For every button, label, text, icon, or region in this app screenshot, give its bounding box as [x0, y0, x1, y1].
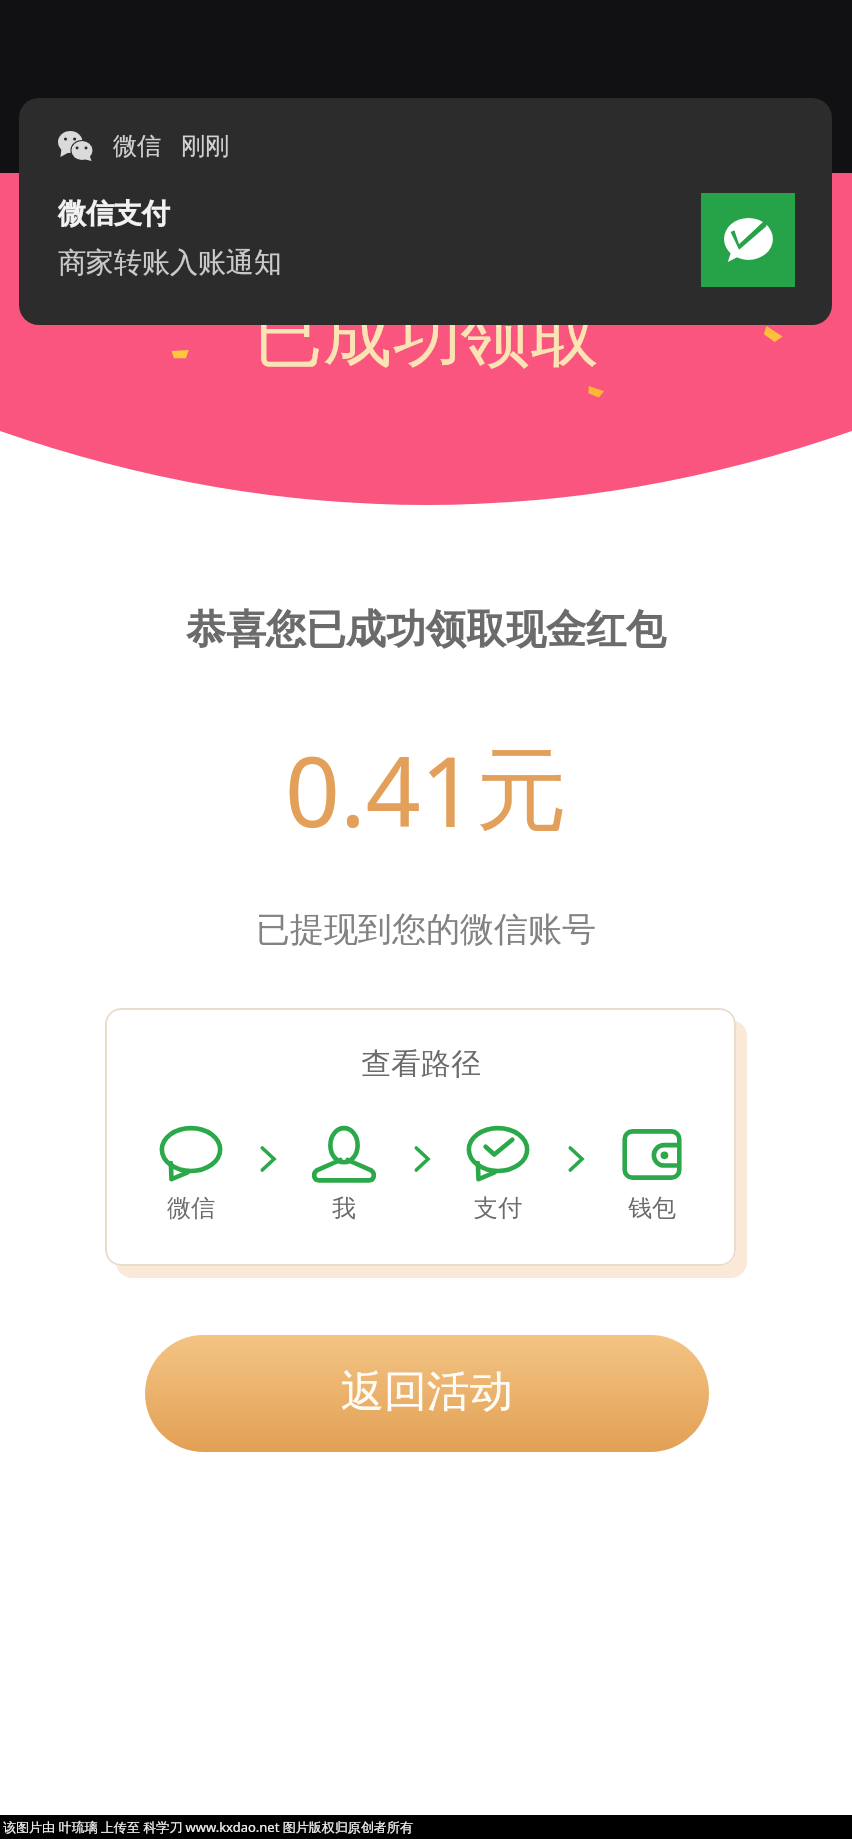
staticText: 微信 — [167, 1193, 215, 1223]
staticText: 恭喜您已成功领取现金红包 — [186, 604, 666, 654]
button[interactable]: 微信 — [19, 98, 832, 325]
staticText: 微信 — [113, 131, 161, 161]
staticText: 该图片由 叶琉璃 上传至 科学刀 www.kxdao.net 图片版权归原创者所… — [3, 1818, 413, 1836]
staticText: 元 — [476, 733, 567, 848]
button[interactable]: 返回活动 — [145, 1335, 709, 1452]
staticText: 支付 — [474, 1193, 522, 1223]
staticText: 已提现到您的微信账号 — [256, 908, 596, 951]
button[interactable]: 微信 — [114, 1127, 268, 1223]
button[interactable]: 我 — [267, 1127, 421, 1223]
staticText: 已成功领取 — [254, 293, 599, 380]
button[interactable]: 支付 — [421, 1127, 575, 1223]
staticText: 返回活动 — [341, 1365, 513, 1419]
staticText: 商家转账入账通知 — [58, 245, 282, 280]
staticText: 查看路径 — [361, 1045, 481, 1083]
staticText: 钱包 — [628, 1193, 676, 1223]
staticText: 刚刚 — [181, 131, 229, 161]
button[interactable]: 钱包 — [575, 1127, 729, 1223]
staticText: 微信支付 — [58, 196, 170, 231]
staticText: 我 — [332, 1193, 356, 1223]
staticText: 0.41 — [285, 724, 476, 855]
